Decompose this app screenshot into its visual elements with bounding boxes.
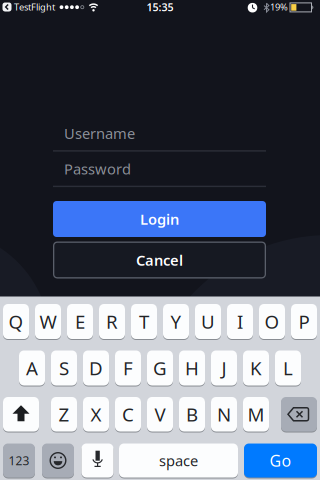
staticText: F (123, 356, 133, 380)
button[interactable]: space (119, 443, 238, 478)
staticText: space (159, 451, 198, 470)
staticText: Password (64, 159, 131, 179)
staticText: C (122, 402, 134, 427)
staticText: 15:35 (146, 0, 173, 14)
button[interactable]: Back to TestFlight (2, 2, 11, 11)
button[interactable]: Go (244, 443, 317, 478)
staticText: N (217, 402, 231, 427)
button[interactable]: Login (53, 201, 266, 237)
staticText: K (250, 356, 262, 380)
staticText: L (283, 356, 293, 380)
staticText: S (59, 356, 69, 380)
button[interactable] (3, 396, 39, 432)
button[interactable]: U (195, 303, 221, 339)
button[interactable]: Y (163, 303, 189, 339)
staticText: R (106, 309, 118, 334)
button[interactable]: M (243, 396, 269, 432)
button[interactable]: 123 (3, 443, 35, 478)
button[interactable] (42, 443, 74, 478)
button[interactable]: Z (51, 396, 77, 432)
staticText: T (139, 309, 149, 334)
staticText: Z (58, 402, 69, 427)
button[interactable]: B (179, 396, 205, 432)
staticText: J (221, 356, 226, 380)
button[interactable]: S (51, 350, 77, 386)
button[interactable]: Username (53, 123, 266, 152)
staticText: 19% (270, 1, 288, 13)
staticText: P (298, 309, 309, 334)
staticText: Go (269, 450, 291, 471)
button[interactable]: L (275, 350, 301, 386)
button[interactable]: G (147, 350, 173, 386)
button[interactable]: O (259, 303, 285, 339)
button[interactable]: X (83, 396, 109, 432)
button[interactable] (281, 396, 317, 432)
staticText: TestFlight (14, 1, 55, 13)
staticText: Q (8, 309, 23, 334)
staticText: E (75, 309, 85, 334)
staticText: H (185, 356, 199, 380)
button[interactable]: D (83, 350, 109, 386)
staticText: Login (140, 209, 179, 229)
button[interactable]: T (131, 303, 157, 339)
staticText: B (186, 402, 198, 427)
button[interactable]: A (19, 350, 45, 386)
button[interactable]: P (291, 303, 317, 339)
staticText: O (264, 309, 279, 334)
button[interactable]: H (179, 350, 205, 386)
staticText: Cancel (136, 250, 183, 270)
staticText: M (247, 402, 264, 427)
staticText: V (154, 402, 165, 427)
staticText: 123 (8, 452, 29, 468)
button[interactable]: Cancel (53, 241, 266, 278)
staticText: U (201, 309, 215, 334)
button[interactable]: F (115, 350, 141, 386)
button[interactable]: E (67, 303, 93, 339)
button[interactable]: N (211, 396, 237, 432)
staticText: G (153, 356, 167, 380)
button[interactable] (81, 443, 113, 478)
button[interactable]: V (147, 396, 173, 432)
button[interactable]: J (211, 350, 237, 386)
button[interactable]: Password (53, 158, 266, 187)
button[interactable]: K (243, 350, 269, 386)
button[interactable]: I (227, 303, 253, 339)
button[interactable]: W (35, 303, 61, 339)
staticText: X (90, 402, 101, 427)
staticText: Y (170, 309, 181, 334)
button[interactable]: C (115, 396, 141, 432)
staticText: I (237, 309, 243, 334)
button[interactable]: Q (3, 303, 29, 339)
staticText: D (89, 356, 103, 380)
staticText: A (26, 356, 38, 380)
staticText: Username (64, 124, 135, 143)
staticText: W (39, 309, 56, 334)
button[interactable]: R (99, 303, 125, 339)
